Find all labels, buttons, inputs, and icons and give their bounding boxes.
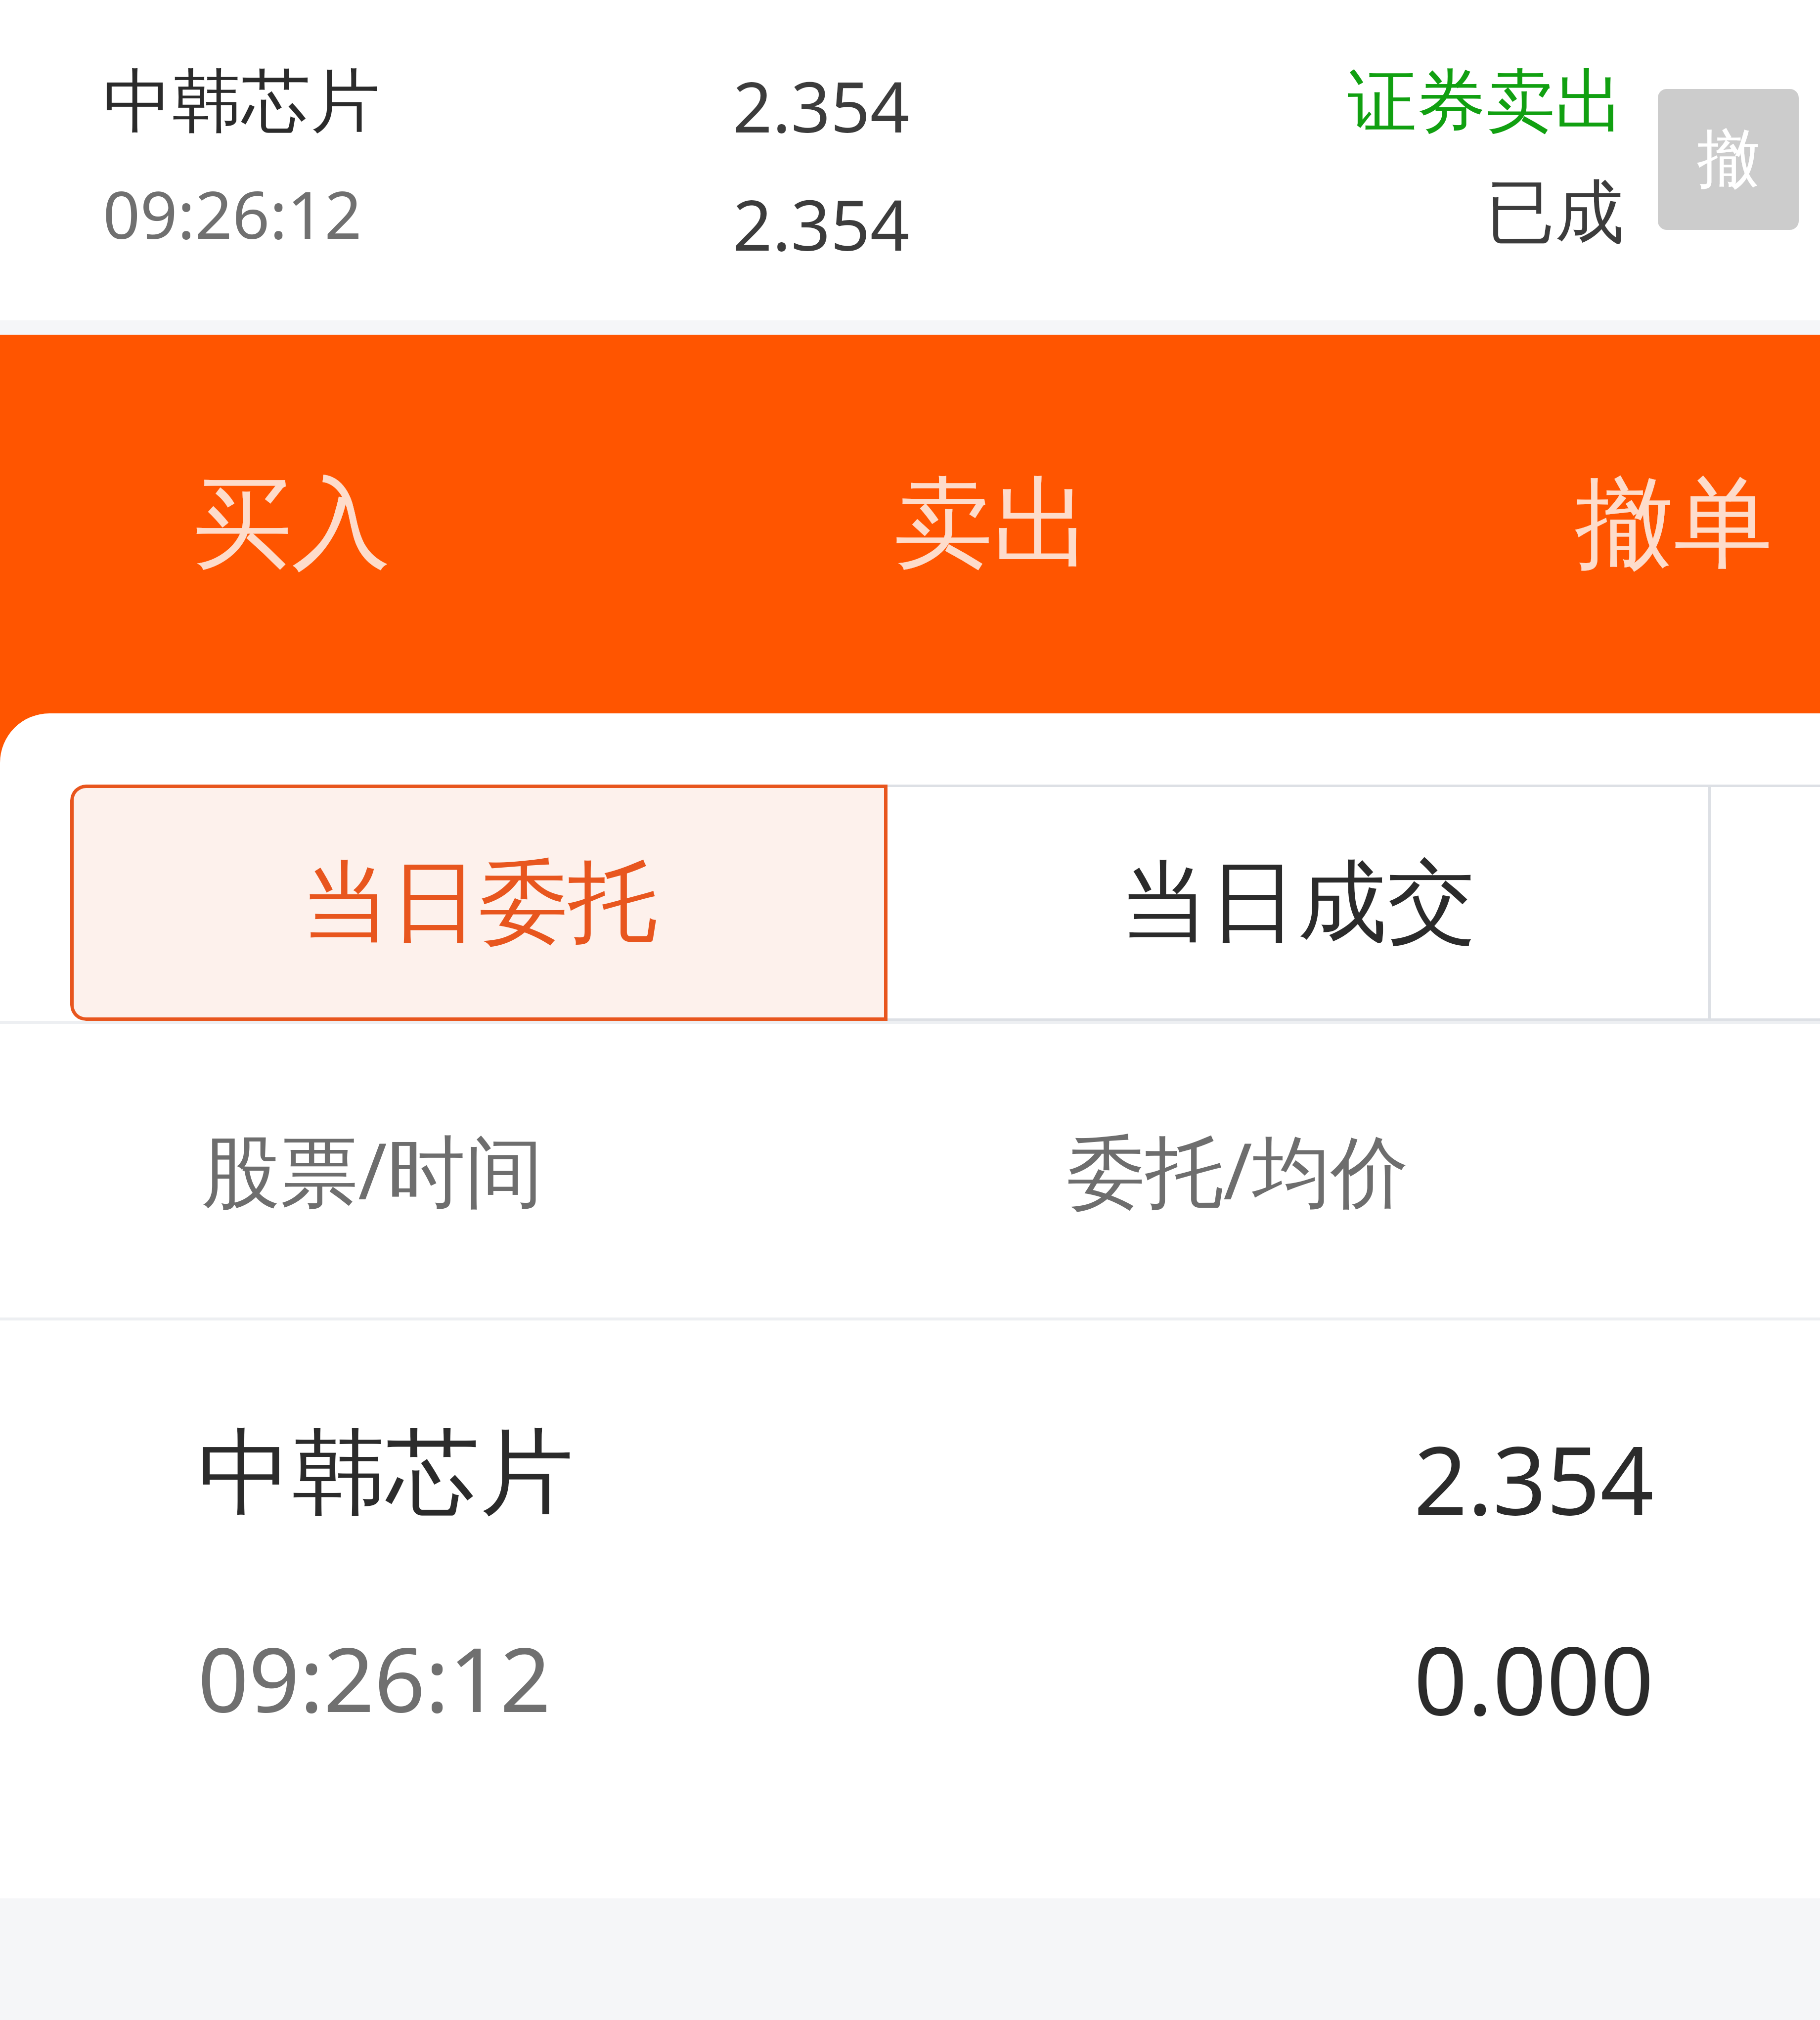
staticText: 股票/时间	[202, 1116, 543, 1223]
staticText: 中韩芯片	[103, 58, 380, 145]
button[interactable]: 当日成交	[888, 785, 1708, 1021]
button[interactable]: 中韩芯片	[0, 0, 1820, 320]
button[interactable]: 买入	[193, 335, 470, 713]
staticText: 0.000	[0, 1615, 1654, 1743]
staticText: 已成	[1486, 169, 1624, 256]
staticText: 当日成交	[1120, 847, 1476, 959]
staticText: 2.354	[733, 58, 910, 153]
staticText: 2.354	[733, 176, 910, 271]
staticText: 卖出	[894, 462, 1092, 586]
staticText: 委托/均价	[1067, 1116, 1409, 1223]
button[interactable]: 中韩芯片	[0, 1320, 1820, 1859]
staticText: 证券卖出	[1347, 58, 1624, 145]
button[interactable]: 撤单	[1658, 89, 1799, 230]
staticText: 买入	[193, 462, 391, 586]
button[interactable]: 撤单	[1575, 335, 1820, 713]
staticText: 09:26:12	[103, 169, 362, 258]
staticText: 当日委托	[301, 847, 657, 959]
button[interactable]: 更多	[1711, 785, 1820, 1021]
staticText: 09:26:12	[198, 1617, 551, 1738]
button[interactable]: 卖出	[894, 335, 1171, 713]
staticText: 2.354	[0, 1414, 1654, 1542]
staticText: 撤单	[1575, 462, 1773, 586]
button[interactable]: 当日委托	[70, 785, 888, 1021]
staticText: 中韩芯片	[198, 1414, 574, 1533]
staticText: 撤	[1697, 120, 1760, 199]
